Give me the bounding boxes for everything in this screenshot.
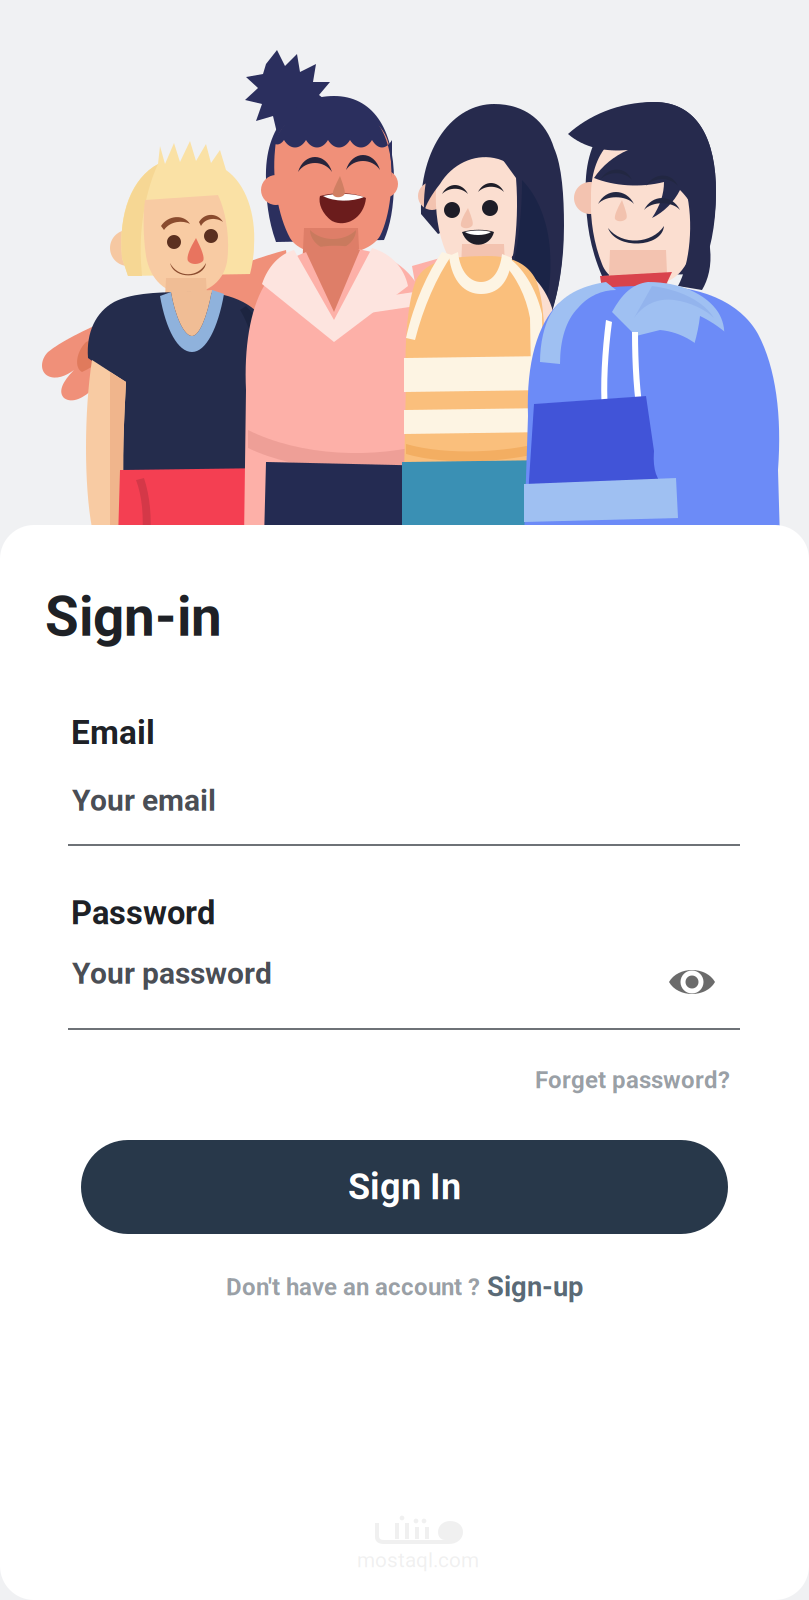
button[interactable]: Sign In [81, 1140, 728, 1234]
staticText: Forget password? [535, 1066, 730, 1094]
staticText: Sign In [348, 1166, 461, 1208]
button[interactable]: Don't have an account ? [226, 1271, 583, 1303]
staticText: Sign-in [45, 585, 222, 649]
staticText: Sign-up [487, 1271, 583, 1303]
staticText: Email [71, 713, 155, 752]
button[interactable]: Forget password? [535, 1066, 730, 1094]
button[interactable]: Show password [669, 965, 715, 999]
staticText: Password [71, 894, 215, 932]
staticText: Your email [72, 783, 216, 818]
staticText: mostaql.com [357, 1548, 479, 1572]
staticText: Your password [72, 956, 272, 991]
staticText: Don't have an account ? [226, 1273, 480, 1301]
